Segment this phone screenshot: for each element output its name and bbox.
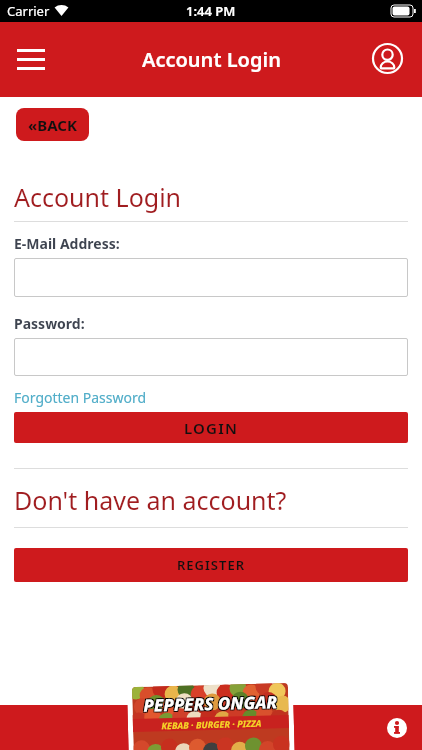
staticText: KEBAB · BURGER · PIZZA [161, 717, 262, 731]
button[interactable] [371, 42, 404, 75]
staticText: 1:44 PM [186, 2, 236, 20]
staticText: Account Login [142, 46, 281, 73]
staticText: PEPPERS ONGAR [142, 689, 277, 716]
button[interactable] [14, 258, 408, 297]
staticText: PEPPERS ONGAR [143, 690, 278, 717]
button[interactable] [17, 49, 45, 70]
staticText: Account Login [14, 180, 182, 214]
button[interactable]: «BACK [16, 108, 89, 141]
button[interactable]: PEPPERS ONGAR [127, 678, 295, 750]
button[interactable] [387, 718, 407, 738]
staticText: Don't have an account? [14, 483, 287, 517]
button[interactable]: LOGIN [14, 412, 408, 443]
staticText: Password: [14, 314, 85, 333]
button[interactable]: REGISTER [14, 548, 408, 582]
button[interactable] [14, 338, 408, 376]
button[interactable]: Forgotten Password [14, 388, 147, 407]
staticText: PEPPERS ONGAR [144, 691, 279, 718]
staticText: PEPPERS ONGAR [144, 689, 279, 716]
staticText: PEPPERS ONGAR [142, 691, 277, 718]
staticText: REGISTER [177, 556, 246, 574]
staticText: «BACK [28, 115, 77, 135]
staticText: Carrier [7, 2, 50, 20]
staticText: LOGIN [184, 418, 239, 438]
staticText: E-Mail Address: [14, 234, 120, 253]
